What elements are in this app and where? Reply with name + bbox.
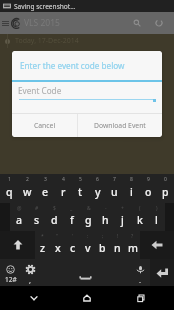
staticText: :	[87, 233, 89, 240]
button[interactable]: +	[114, 203, 131, 231]
staticText: w	[23, 185, 32, 199]
button[interactable]: 3	[36, 174, 54, 203]
staticText: Event Code	[18, 85, 62, 96]
staticText: e	[42, 185, 49, 199]
button[interactable]: Cancel	[12, 114, 77, 137]
staticText: r	[61, 185, 66, 199]
staticText: i	[130, 185, 133, 199]
staticText: 12#	[5, 275, 17, 284]
button[interactable]: Search	[126, 12, 148, 34]
staticText: t	[78, 185, 83, 199]
staticText: _	[70, 205, 73, 212]
button[interactable]: Home	[67, 286, 107, 310]
staticText: 8	[130, 176, 133, 183]
staticText: Cancel	[34, 121, 56, 130]
button[interactable]: 8	[123, 174, 140, 203]
staticText: n	[114, 241, 121, 255]
staticText: +	[121, 205, 124, 212]
staticText: ,	[29, 275, 32, 285]
staticText: 9	[147, 176, 150, 183]
staticText: 7	[113, 176, 116, 183]
staticText: p	[162, 185, 169, 199]
button[interactable]: Shift	[0, 231, 35, 259]
staticText: VLS 2015	[24, 17, 60, 29]
button[interactable]: 9	[140, 174, 157, 203]
staticText: *	[41, 233, 44, 240]
button[interactable]: Voice input	[131, 259, 150, 286]
staticText: q	[6, 185, 13, 199]
staticText: 5	[79, 176, 82, 183]
staticText: '	[72, 233, 74, 240]
button[interactable]: :	[80, 231, 95, 259]
button[interactable]: Settings	[21, 259, 39, 286]
staticText: )	[156, 205, 158, 212]
staticText: -	[105, 205, 107, 212]
staticText: (	[139, 205, 141, 212]
staticText: k	[137, 213, 143, 227]
staticText: #	[35, 205, 39, 212]
button[interactable]: -	[97, 203, 114, 231]
staticText: Saving screenshot...	[14, 2, 76, 11]
button[interactable]: #	[28, 203, 46, 231]
button[interactable]: 6	[89, 174, 106, 203]
staticText: 1	[8, 176, 11, 183]
button[interactable]: 5	[72, 174, 89, 203]
button[interactable]: &	[80, 203, 97, 231]
staticText: Download Event	[94, 121, 146, 130]
button[interactable]: Emoji and symbols	[0, 259, 21, 286]
button[interactable]: Download Event	[78, 114, 162, 137]
staticText: d	[51, 213, 58, 227]
staticText: !	[117, 233, 119, 240]
button[interactable]: 1	[0, 174, 18, 203]
staticText: z	[40, 241, 46, 255]
staticText: $	[53, 205, 56, 212]
button[interactable]: Space	[39, 259, 131, 286]
button[interactable]: !	[110, 231, 125, 259]
button[interactable]: "	[50, 231, 65, 259]
staticText: b	[99, 241, 106, 255]
button[interactable]: $	[46, 203, 63, 231]
staticText: u	[111, 185, 118, 199]
button[interactable]: 4	[54, 174, 72, 203]
staticText: 6	[96, 176, 99, 183]
staticText: l	[155, 213, 158, 227]
button[interactable]: 2	[18, 174, 36, 203]
staticText: f	[70, 213, 74, 227]
staticText: .	[139, 275, 142, 285]
staticText: 4	[62, 176, 65, 183]
staticText: 0	[164, 176, 167, 183]
staticText: g	[85, 213, 92, 227]
button[interactable]: Enter	[150, 259, 174, 286]
button[interactable]: ;	[95, 231, 110, 259]
staticText: Today, 17-Dec-2014	[15, 36, 79, 46]
staticText: c	[70, 241, 76, 255]
staticText: v	[85, 241, 91, 255]
staticText: 2	[26, 176, 29, 183]
staticText: 3	[44, 176, 47, 183]
button[interactable]: Backspace	[140, 231, 174, 259]
button[interactable]: )	[148, 203, 165, 231]
button[interactable]: 0	[157, 174, 174, 203]
button[interactable]: _	[63, 203, 80, 231]
staticText: j	[121, 213, 124, 227]
staticText: y	[95, 185, 101, 199]
button[interactable]: 7	[106, 174, 123, 203]
staticText: "	[56, 233, 59, 240]
staticText: x	[55, 241, 61, 255]
button[interactable]: @	[10, 203, 28, 231]
button[interactable]: Back	[14, 286, 54, 310]
button[interactable]: Refresh	[148, 12, 170, 34]
staticText: s	[34, 213, 40, 227]
button[interactable]: *	[35, 231, 50, 259]
button[interactable]: Menu	[0, 12, 10, 34]
button[interactable]: (	[131, 203, 148, 231]
button[interactable]: ?	[125, 231, 140, 259]
staticText: ?	[131, 233, 134, 240]
staticText: @	[17, 205, 22, 212]
staticText: h	[102, 213, 109, 227]
button[interactable]: '	[65, 231, 80, 259]
staticText: m	[128, 241, 138, 255]
button[interactable]: Recents	[121, 286, 161, 310]
staticText: Enter the event code below	[20, 60, 125, 71]
staticText: ;	[102, 233, 104, 240]
